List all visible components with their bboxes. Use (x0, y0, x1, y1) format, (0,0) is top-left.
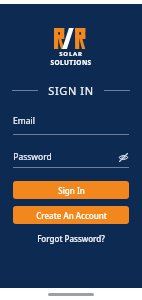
button[interactable]: Email (13, 115, 129, 135)
staticText: Email (13, 115, 35, 127)
staticText: SOLUTIONS (50, 58, 92, 67)
staticText: Forgot Password? (37, 233, 105, 244)
button[interactable]: Create An Account (13, 206, 129, 224)
button[interactable]: Show password (117, 151, 129, 163)
button[interactable]: Password (13, 151, 129, 168)
button[interactable]: Sign In (13, 181, 129, 199)
staticText: SIGN IN (48, 83, 94, 98)
staticText: SOLAR (59, 50, 83, 58)
button[interactable]: Forgot Password? (31, 231, 111, 246)
staticText: Sign In (58, 185, 85, 196)
staticText: Create An Account (36, 210, 107, 221)
staticText: Password (13, 151, 52, 163)
